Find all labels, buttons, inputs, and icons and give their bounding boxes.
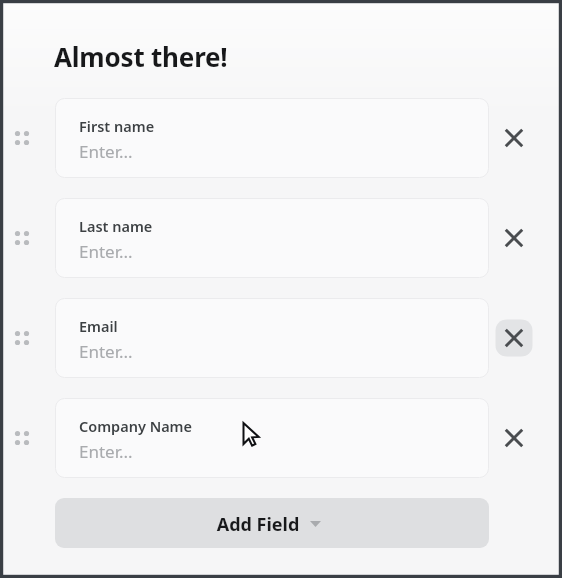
button[interactable]: Remove Email — [496, 320, 533, 357]
button[interactable]: Company Name — [55, 398, 489, 478]
button[interactable]: Remove First name — [496, 120, 533, 157]
button[interactable]: Reorder Last name — [6, 222, 38, 254]
staticText: Email — [79, 316, 118, 336]
button[interactable]: Reorder Company Name — [6, 422, 38, 454]
button[interactable]: Remove Company Name — [496, 420, 533, 457]
staticText: Enter... — [79, 340, 133, 363]
button[interactable]: Last name — [55, 198, 489, 278]
staticText: Add Field — [55, 512, 461, 537]
button[interactable]: Reorder First name — [6, 122, 38, 154]
button[interactable]: Remove Last name — [496, 220, 533, 257]
staticText: First name — [79, 116, 155, 136]
button[interactable]: Add Field — [55, 498, 489, 548]
staticText: Enter... — [79, 240, 133, 263]
staticText: Last name — [79, 216, 153, 236]
button[interactable]: Email — [55, 298, 489, 378]
button[interactable]: Reorder Email — [6, 322, 38, 354]
staticText: Almost there! — [54, 39, 228, 74]
button[interactable]: First name — [55, 98, 489, 178]
staticText: Enter... — [79, 440, 133, 463]
staticText: Enter... — [79, 140, 133, 163]
staticText: Company Name — [79, 416, 193, 436]
